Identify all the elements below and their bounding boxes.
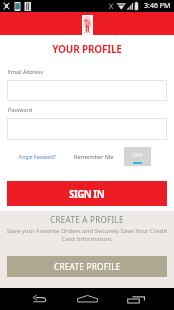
- staticText: CREATE PROFILE: [54, 261, 121, 272]
- staticText: CREATE A PROFILE: [0, 214, 174, 225]
- button[interactable]: Password field: [7, 118, 167, 140]
- button[interactable]: Email Address field: [7, 80, 167, 101]
- staticText: Password: [8, 106, 32, 113]
- staticText: Forgot Password?: [19, 154, 56, 160]
- button[interactable]: Logo: [82, 15, 93, 35]
- button[interactable]: Forgot Password?: [15, 151, 60, 163]
- button[interactable]: SIGN IN: [7, 181, 167, 206]
- staticText: YOUR PROFILE: [0, 42, 174, 56]
- button[interactable]: Home: [70, 288, 105, 310]
- staticText: SIGN IN: [69, 187, 105, 201]
- staticText: 3:46 PM: [144, 1, 171, 11]
- staticText: Email Address: [8, 68, 44, 75]
- staticText: ON: [133, 151, 143, 159]
- button[interactable]: Remember Me switch: [124, 147, 151, 166]
- button[interactable]: Back: [21, 288, 56, 310]
- button[interactable]: CREATE PROFILE: [7, 256, 167, 277]
- button[interactable]: Recent apps: [118, 288, 153, 310]
- staticText: Remember Me: [74, 153, 114, 161]
- staticText: Save your Favorite Orders and Securely S…: [2, 226, 172, 242]
